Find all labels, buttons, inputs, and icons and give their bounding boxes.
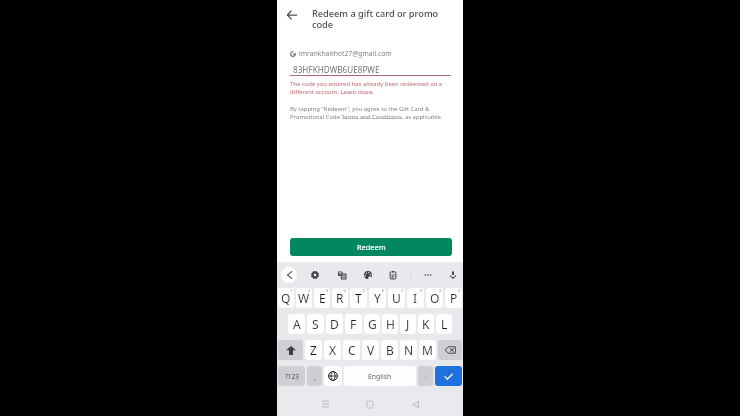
staticText: Redeem	[357, 242, 386, 252]
staticText: O	[430, 290, 440, 306]
button[interactable]: C	[343, 340, 360, 360]
staticText: English	[368, 372, 392, 381]
button[interactable]: ,	[307, 366, 322, 386]
staticText: S	[312, 316, 319, 332]
staticText: imrankhanhot27@gmail.com	[299, 49, 392, 58]
staticText: H	[386, 316, 395, 332]
staticText: Q	[281, 290, 291, 306]
button[interactable]: Previous	[281, 267, 297, 283]
button[interactable]: J	[400, 314, 416, 334]
button[interactable]: V	[362, 340, 379, 360]
button[interactable]: P	[445, 288, 462, 308]
staticText: 83HFKHDWB6UE8PWE	[293, 64, 380, 75]
staticText: 1	[290, 288, 293, 293]
button[interactable]: Back	[281, 4, 302, 25]
button[interactable]: K	[418, 314, 434, 334]
button[interactable]: E	[314, 288, 330, 308]
staticText: 6	[382, 288, 385, 293]
staticText: 4	[344, 288, 347, 293]
staticText: 8	[420, 288, 423, 293]
staticText: ?123	[285, 372, 299, 381]
staticText: E	[319, 290, 326, 306]
staticText: 0	[458, 288, 461, 293]
button[interactable]: M	[419, 340, 436, 360]
staticText: F	[350, 316, 357, 332]
button[interactable]: L	[436, 314, 452, 334]
button[interactable]: S	[307, 314, 324, 334]
button[interactable]: O	[426, 288, 443, 308]
staticText: T	[355, 290, 362, 306]
button[interactable]: More options	[421, 268, 434, 281]
button[interactable]: B	[381, 340, 398, 360]
staticText: R	[336, 290, 344, 306]
staticText: 2	[308, 288, 311, 293]
button[interactable]: Voice input	[446, 268, 459, 281]
button[interactable]: .	[418, 366, 433, 386]
staticText: 5	[363, 288, 366, 293]
button[interactable]: W	[296, 288, 312, 308]
button[interactable]: N	[400, 340, 417, 360]
button[interactable]: Redeem	[290, 238, 452, 256]
staticText: Redeem a gift card or promo code	[312, 7, 450, 31]
button[interactable]: Themes	[361, 268, 374, 281]
staticText: Z	[310, 342, 317, 358]
button[interactable]: X	[324, 340, 341, 360]
staticText: By tapping "Redeem", you agree to the Gi…	[290, 105, 450, 120]
staticText: D	[330, 316, 339, 332]
staticText: .	[425, 371, 427, 381]
staticText: ,	[314, 373, 316, 383]
button[interactable]: Y	[369, 288, 386, 308]
button[interactable]: F	[345, 314, 362, 334]
button[interactable]: Translate	[335, 268, 348, 281]
button[interactable]: 83HFKHDWB6UE8PWE	[290, 60, 451, 76]
staticText: L	[441, 316, 448, 332]
button[interactable]: R	[332, 288, 348, 308]
button[interactable]: T	[350, 288, 367, 308]
staticText: V	[367, 342, 375, 358]
button[interactable]: Back	[406, 395, 424, 413]
staticText: M	[422, 342, 433, 358]
staticText: The code you entered has already been re…	[290, 80, 446, 95]
button[interactable]: H	[382, 314, 398, 334]
button[interactable]: Q	[278, 288, 294, 308]
button[interactable]: Shift	[278, 340, 303, 360]
staticText: U	[392, 290, 401, 306]
button[interactable]: Home	[361, 395, 379, 413]
button[interactable]: Settings	[308, 268, 321, 281]
staticText: X	[329, 342, 337, 358]
staticText: C	[348, 342, 356, 358]
staticText: K	[422, 316, 430, 332]
button[interactable]: A	[288, 314, 305, 334]
button[interactable]: Change language	[324, 366, 342, 386]
button[interactable]: G	[364, 314, 380, 334]
staticText: I	[413, 290, 418, 306]
button[interactable]: Z	[305, 340, 322, 360]
staticText: B	[386, 342, 394, 358]
staticText: P	[450, 290, 458, 306]
button[interactable]: D	[326, 314, 343, 334]
staticText: G	[368, 316, 377, 332]
staticText: 3	[326, 288, 329, 293]
button[interactable]: ?123	[278, 366, 305, 386]
staticText: J	[406, 316, 410, 332]
button[interactable]: U	[388, 288, 405, 308]
staticText: W	[298, 290, 310, 306]
button[interactable]: I	[407, 288, 424, 308]
button[interactable]: Enter	[435, 366, 462, 386]
button[interactable]: Clipboard	[386, 268, 399, 281]
staticText: A	[293, 316, 301, 332]
staticText: N	[404, 342, 414, 358]
staticText: Y	[374, 290, 381, 306]
staticText: 9	[439, 288, 442, 293]
button[interactable]: Recent apps	[316, 395, 334, 413]
button[interactable]: Backspace	[438, 340, 462, 360]
button[interactable]: imrankhanhot27@gmail.com	[290, 49, 392, 58]
button[interactable]: English	[344, 366, 416, 386]
staticText: 7	[401, 288, 404, 293]
